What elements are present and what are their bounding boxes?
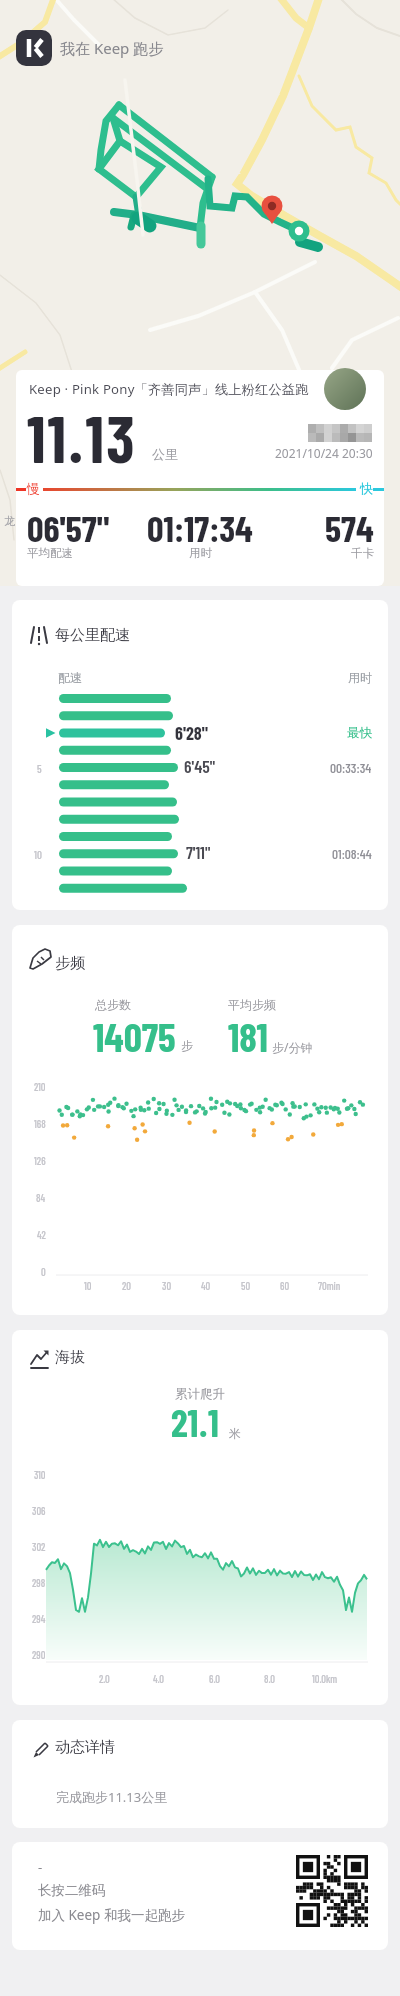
button[interactable] [16, 370, 384, 586]
staticText: 2.0 [99, 1672, 110, 1685]
button[interactable] [324, 368, 366, 410]
staticText: 84 [36, 1191, 46, 1204]
staticText: 公里 [152, 446, 178, 462]
staticText: 290 [32, 1648, 46, 1661]
staticText: 步 [181, 1038, 193, 1053]
staticText: 10 [34, 848, 42, 861]
staticText: 06'57" [27, 505, 110, 549]
staticText: 7'11" [186, 841, 211, 862]
staticText: 米 [229, 1426, 241, 1441]
staticText: 302 [32, 1540, 46, 1553]
staticText: 10.0km [312, 1672, 338, 1685]
button[interactable] [12, 1330, 388, 1705]
staticText: 长按二维码 [38, 1882, 106, 1899]
staticText: 步频 [55, 954, 85, 973]
staticText: 14075 [93, 1012, 176, 1060]
staticText: Keep · Pink Pony「齐善同声」线上粉红公益跑 [29, 380, 309, 398]
staticText: 每公里配速 [55, 626, 130, 645]
button[interactable] [12, 925, 388, 1315]
button[interactable] [12, 600, 388, 910]
staticText: 用时 [348, 670, 372, 685]
staticText: 步/分钟 [272, 1039, 313, 1055]
staticText: 5 [37, 762, 42, 775]
staticText: 60 [280, 1279, 290, 1292]
staticText: 千卡 [351, 546, 374, 560]
staticText: 294 [32, 1612, 46, 1625]
staticText: 6.0 [209, 1672, 220, 1685]
staticText: 平均步频 [228, 997, 276, 1012]
staticText: 01:08:44 [332, 845, 372, 861]
staticText: 306 [32, 1504, 46, 1517]
staticText: 龙 [4, 514, 15, 528]
staticText: 50 [241, 1279, 251, 1292]
staticText: 42 [37, 1228, 46, 1241]
staticText: 用时 [189, 546, 212, 560]
staticText: 40 [201, 1279, 211, 1292]
staticText: 4.0 [153, 1672, 165, 1685]
staticText: 574 [325, 505, 374, 549]
staticText: 慢 [27, 480, 40, 496]
staticText: 累计爬升 [175, 1386, 225, 1402]
staticText: 6'28" [175, 722, 209, 744]
staticText: - [38, 1858, 43, 1876]
staticText: 2021/10/24 20:30 [275, 445, 373, 461]
staticText: 海拔 [55, 1348, 85, 1367]
staticText: 8.0 [264, 1672, 275, 1685]
staticText: 动态详情 [55, 1738, 115, 1757]
staticText: 168 [34, 1117, 46, 1130]
staticText: 298 [32, 1576, 46, 1589]
staticText: 0 [41, 1265, 46, 1278]
button[interactable] [12, 1842, 388, 1950]
staticText: 10 [84, 1279, 92, 1292]
staticText: 310 [34, 1468, 46, 1481]
staticText: 总步数 [95, 997, 131, 1012]
staticText: 11.13 [27, 398, 138, 476]
staticText: 完成跑步11.13公里 [56, 1788, 168, 1806]
staticText: 我在 Keep 跑步 [60, 38, 164, 58]
staticText: 快 [360, 480, 373, 496]
staticText: 210 [34, 1080, 46, 1093]
staticText: 126 [34, 1154, 46, 1167]
staticText: 70min [318, 1279, 341, 1292]
staticText: 加入 Keep 和我一起跑步 [38, 1906, 185, 1924]
staticText: 00:33:34 [330, 759, 372, 775]
staticText: 6'45" [184, 755, 216, 776]
staticText: 01:17:34 [147, 505, 253, 549]
staticText: 平均配速 [27, 546, 73, 560]
staticText: 30 [162, 1279, 172, 1292]
staticText: 21.1 [171, 1399, 220, 1445]
staticText: 配速 [58, 670, 82, 685]
staticText: 最快 [347, 725, 372, 741]
staticText: 20 [122, 1279, 132, 1292]
button[interactable] [12, 1720, 388, 1828]
button[interactable] [16, 30, 52, 66]
staticText: 181 [228, 1012, 268, 1060]
